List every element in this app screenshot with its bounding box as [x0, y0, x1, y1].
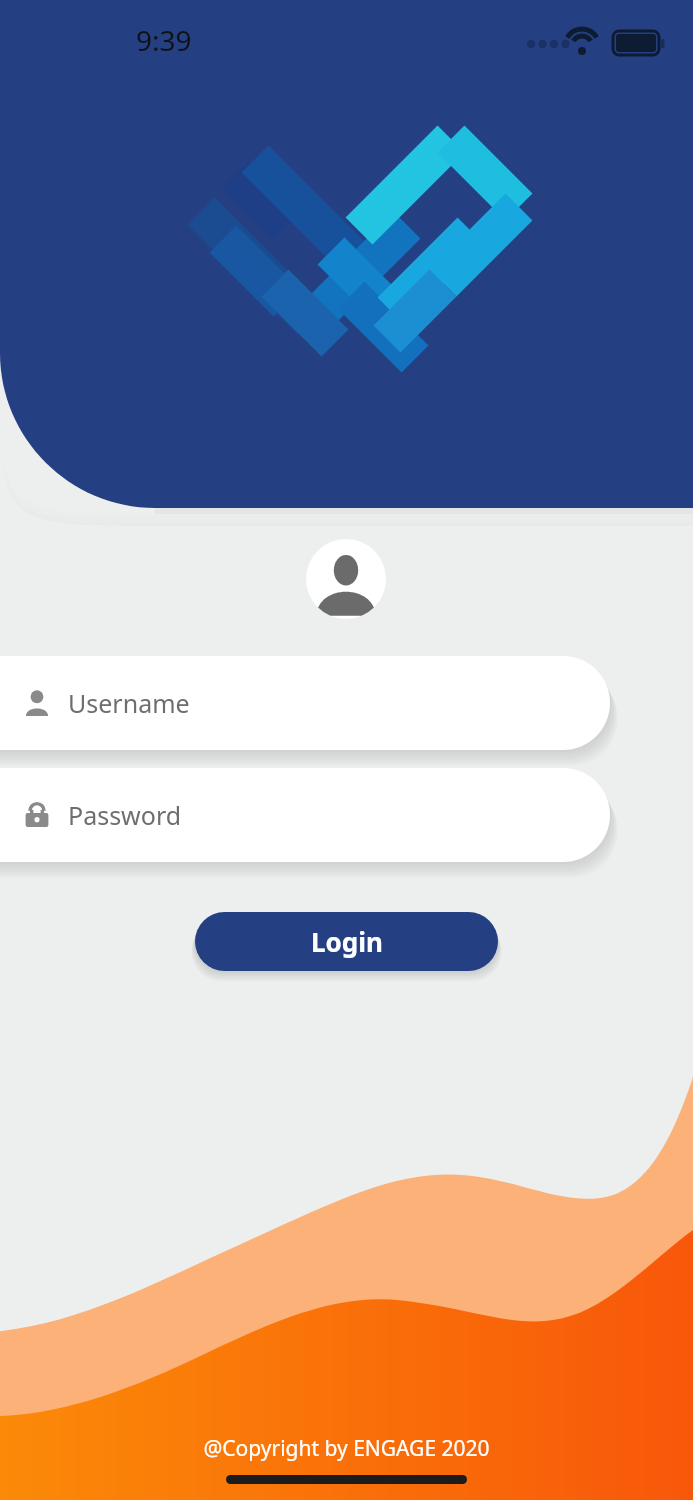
button[interactable]: Password	[0, 768, 610, 862]
staticText: 9:39	[136, 21, 192, 59]
staticText: Password	[68, 798, 182, 832]
staticText: @Copyright by ENGAGE 2020	[0, 1434, 693, 1463]
button[interactable]: Username	[0, 656, 610, 750]
staticText: Login	[311, 924, 383, 959]
staticText: Username	[68, 686, 190, 720]
button[interactable]: Login	[195, 912, 498, 971]
